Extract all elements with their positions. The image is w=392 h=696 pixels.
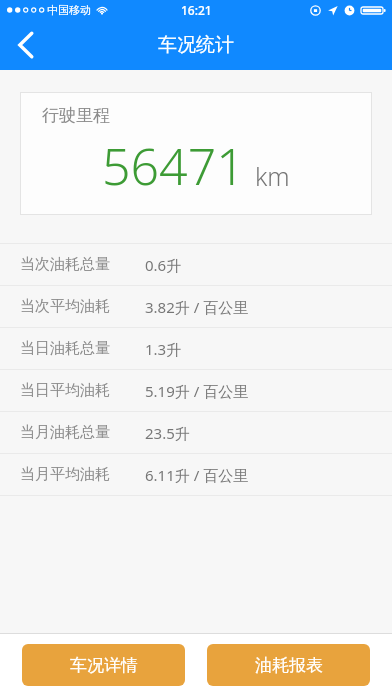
staticText: 当日平均油耗 <box>20 381 110 400</box>
staticText: 中国移动 <box>47 3 91 17</box>
button[interactable]: 返回 <box>0 20 50 70</box>
staticText: km <box>255 159 290 193</box>
staticText: 当次油耗总量 <box>20 255 110 274</box>
staticText: 3.82升 / 百公里 <box>145 297 249 317</box>
staticText: 当日油耗总量 <box>20 339 110 358</box>
button[interactable]: 当月平均油耗 <box>0 454 392 495</box>
button[interactable]: 车况详情 <box>22 644 185 686</box>
staticText: 当次平均油耗 <box>20 297 110 316</box>
staticText: 23.5升 <box>145 423 190 443</box>
staticText: 车况详情 <box>70 655 138 676</box>
staticText: 56471 <box>102 132 245 200</box>
button[interactable]: 油耗报表 <box>207 644 370 686</box>
staticText: 油耗报表 <box>255 655 323 676</box>
staticText: 1.3升 <box>145 339 182 359</box>
staticText: 0.6升 <box>145 255 182 275</box>
staticText: 16:21 <box>181 2 212 18</box>
button[interactable]: 当日油耗总量 <box>0 328 392 369</box>
staticText: 车况统计 <box>158 33 234 57</box>
button[interactable]: 当日平均油耗 <box>0 370 392 411</box>
staticText: 当月平均油耗 <box>20 465 110 484</box>
staticText: 行驶里程 <box>42 105 110 126</box>
staticText: 当月油耗总量 <box>20 423 110 442</box>
button[interactable]: 当月油耗总量 <box>0 412 392 453</box>
staticText: 6.11升 / 百公里 <box>145 465 249 485</box>
button[interactable]: 当次平均油耗 <box>0 286 392 327</box>
staticText: 5.19升 / 百公里 <box>145 381 249 401</box>
button[interactable]: 当次油耗总量 <box>0 244 392 285</box>
